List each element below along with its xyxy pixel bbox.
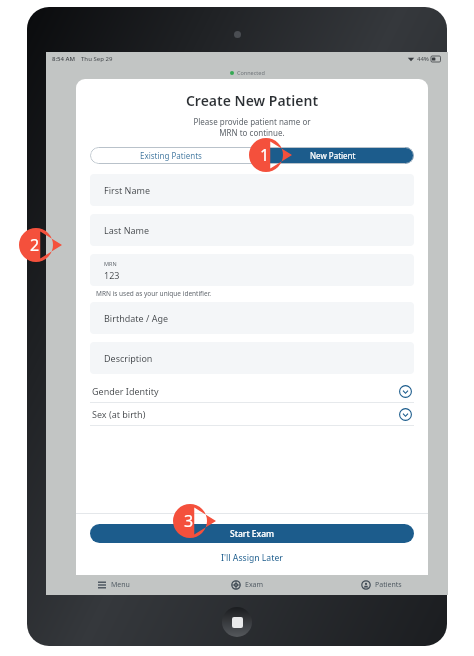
staticText: Exam	[245, 580, 264, 590]
button[interactable]: I'll Assign Later	[76, 552, 428, 564]
staticText: Sex (at birth)	[92, 408, 399, 420]
button[interactable]: MRN	[90, 254, 414, 286]
staticText: Last Name	[104, 224, 150, 236]
staticText: MRN is used as your unique identifier.	[96, 289, 212, 298]
staticText: MRN	[104, 260, 117, 267]
staticText: MRN to continue.	[76, 127, 428, 138]
staticText: Gender Identity	[92, 385, 399, 397]
staticText: First Name	[104, 184, 150, 196]
other: Expand Sex (at birth)	[399, 408, 412, 421]
button[interactable]: Birthdate / Age	[90, 302, 414, 334]
staticText: Create New Patient	[76, 91, 428, 110]
button[interactable]: New Patient	[252, 147, 414, 164]
button[interactable]: Gender Identity	[90, 380, 414, 403]
staticText: Thu Sep 29	[81, 55, 113, 63]
button[interactable]: Sex (at birth)	[90, 403, 414, 426]
staticText: New Patient	[310, 150, 356, 161]
staticText: Please provide patient name or	[76, 116, 428, 127]
staticText: Connected	[237, 69, 265, 76]
staticText: I'll Assign Later	[221, 552, 283, 564]
button[interactable]: First Name	[90, 174, 414, 206]
staticText: Description	[104, 352, 153, 364]
button[interactable]: Start Exam	[90, 524, 414, 543]
button[interactable]: Last Name	[90, 214, 414, 246]
button[interactable]: Menu	[46, 575, 180, 595]
staticText: Patients	[375, 580, 402, 590]
other: Expand Gender Identity	[399, 385, 412, 398]
staticText: 3	[184, 510, 194, 532]
button[interactable]: Description	[90, 342, 414, 374]
staticText: 8:54 AM	[52, 55, 76, 63]
button[interactable]: Exam	[180, 575, 314, 595]
staticText: Menu	[111, 580, 130, 590]
staticText: 1	[260, 144, 270, 166]
button[interactable]: Home	[222, 607, 252, 637]
staticText: 2	[30, 234, 40, 256]
staticText: Existing Patients	[140, 150, 202, 161]
button[interactable]: Patients	[314, 575, 448, 595]
staticText: 44%	[417, 55, 429, 63]
staticText: 123	[104, 269, 120, 281]
staticText: Start Exam	[230, 528, 275, 540]
button[interactable]: Existing Patients	[90, 147, 252, 164]
staticText: Birthdate / Age	[104, 312, 168, 324]
